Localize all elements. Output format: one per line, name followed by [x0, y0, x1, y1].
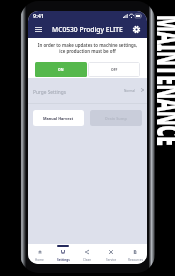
staticText: 9:41 — [33, 12, 44, 19]
button[interactable]: OFF — [88, 62, 140, 77]
staticText: MC0530 Prodigy ELITE — [52, 25, 123, 34]
button[interactable]: Drain Sump — [90, 110, 142, 126]
staticText: Purge Settings — [33, 89, 66, 96]
button[interactable]: Clean — [75, 244, 99, 264]
button[interactable]: Purge Settings — [28, 78, 147, 103]
staticText: Resources — [128, 258, 143, 262]
staticText: Service — [106, 258, 117, 262]
staticText: Normal — [124, 89, 135, 93]
staticText: Settings — [57, 258, 70, 262]
button[interactable]: Service — [99, 244, 123, 264]
button[interactable]: Home — [28, 244, 51, 264]
staticText: Drain Sump — [105, 116, 127, 121]
button[interactable]: Manual Harvest — [33, 110, 84, 126]
button[interactable]: Settings — [51, 244, 75, 264]
button[interactable]: Menu — [32, 23, 45, 36]
button[interactable]: Settings — [130, 23, 143, 36]
staticText: OFF — [111, 67, 118, 72]
staticText: ON — [58, 67, 64, 72]
button[interactable]: ON — [35, 62, 87, 77]
staticText: Home — [35, 258, 44, 262]
staticText: In order to make updates to machine sett… — [28, 42, 147, 54]
staticText: Manual Harvest — [43, 116, 74, 121]
staticText: Clean — [83, 258, 92, 262]
button[interactable]: Resources — [123, 244, 147, 264]
